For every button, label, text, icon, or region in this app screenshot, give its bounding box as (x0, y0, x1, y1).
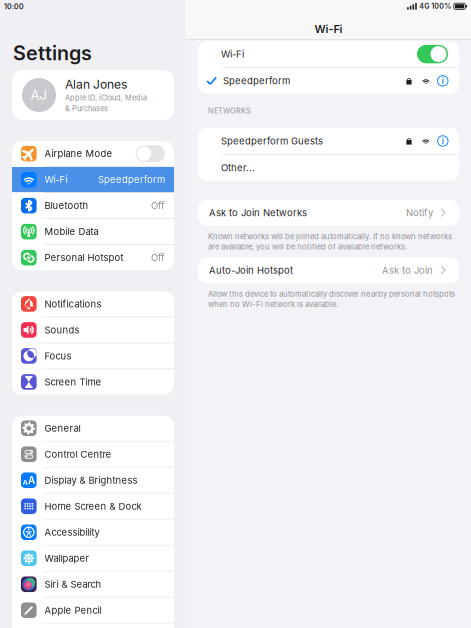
staticText: Off (151, 200, 165, 211)
button[interactable]: Mobile Data (12, 219, 174, 244)
staticText: Apple ID, iCloud, Media (65, 93, 147, 102)
staticText: Ask to Join Networks (209, 207, 307, 219)
staticText: & Purchases (65, 104, 108, 113)
staticText: Mobile Data (45, 226, 99, 237)
staticText: Speedperform (98, 174, 165, 185)
staticText: A (28, 474, 35, 486)
staticText: Sounds (45, 324, 80, 336)
staticText: Notify (406, 207, 433, 219)
button[interactable]: Notifications (12, 291, 174, 317)
staticText: Apple Pencil (45, 604, 102, 616)
staticText: Off (151, 252, 165, 263)
staticText: i (442, 136, 444, 146)
button[interactable]: Wi-Fi (12, 167, 174, 192)
staticText: AJ (30, 87, 47, 103)
button[interactable]: Apple Pencil (12, 598, 174, 623)
staticText: General (45, 422, 81, 434)
button[interactable]: Ask to Join Networks (186, 200, 471, 226)
staticText: 10:00 (4, 2, 24, 11)
button[interactable]: Wallpaper (12, 546, 174, 571)
staticText: Personal Hotspot (45, 252, 124, 263)
staticText: NETWORKS (208, 106, 251, 115)
staticText: Control Centre (45, 448, 112, 460)
staticText: Wallpaper (45, 552, 90, 564)
staticText: Focus (45, 350, 72, 362)
staticText: Speedperform Guests (221, 135, 323, 147)
staticText: Wi-Fi (221, 48, 244, 60)
staticText: are available, you will be notified of a… (208, 242, 407, 251)
staticText: Known networks will be joined automatica… (208, 232, 452, 241)
button[interactable]: Focus (12, 343, 174, 369)
staticText: Accessibility (45, 526, 100, 538)
staticText: Auto-Join Hotspot (209, 265, 293, 276)
staticText: Allow this device to automatically disco… (208, 289, 455, 299)
button[interactable]: AJ (12, 70, 174, 120)
button[interactable]: Home Screen & Dock (12, 494, 174, 519)
staticText: Alan Jones (65, 77, 127, 92)
staticText: Notifications (45, 298, 102, 310)
button[interactable]: A (12, 468, 174, 493)
button[interactable]: Sounds (12, 317, 174, 343)
staticText: Speedperform (223, 75, 290, 87)
staticText: Screen Time (45, 376, 102, 388)
button[interactable]: Accessibility (12, 520, 174, 545)
staticText: Wi-Fi (314, 22, 342, 36)
button[interactable]: Screen Time (12, 369, 174, 395)
button[interactable]: Control Centre (12, 442, 174, 467)
staticText: Bluetooth (45, 200, 89, 211)
button[interactable]: Airplane Mode (12, 141, 174, 166)
staticText: Siri & Search (45, 578, 102, 590)
button[interactable]: Bluetooth (12, 193, 174, 218)
staticText: Settings (13, 41, 92, 65)
staticText: Ask to Join (382, 265, 433, 276)
staticText: Airplane Mode (45, 148, 113, 159)
staticText: Other... (221, 162, 255, 173)
button[interactable]: Personal Hotspot (12, 245, 174, 270)
staticText: 4G 100% (419, 2, 451, 10)
staticText: Wi-Fi (45, 174, 68, 185)
staticText: i (442, 76, 444, 86)
staticText: A (23, 478, 28, 486)
staticText: Home Screen & Dock (45, 500, 142, 512)
staticText: when no Wi-Fi network is available. (208, 300, 338, 309)
staticText: Display & Brightness (45, 474, 138, 486)
button[interactable]: Siri & Search (12, 572, 174, 597)
button[interactable]: General (12, 416, 174, 441)
button[interactable]: Auto-Join Hotspot (186, 257, 471, 283)
